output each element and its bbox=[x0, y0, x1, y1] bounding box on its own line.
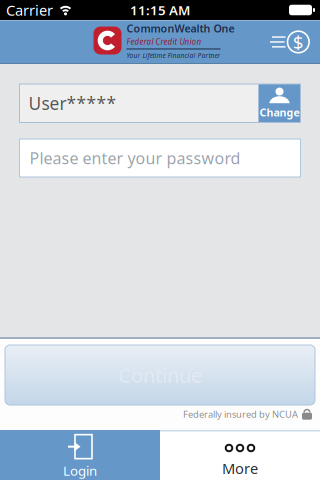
staticText: $ bbox=[293, 30, 304, 54]
staticText: More bbox=[222, 458, 258, 478]
button[interactable]: Change user bbox=[258, 84, 300, 122]
button[interactable]: Quick Balance bbox=[270, 30, 310, 54]
staticText: Login bbox=[63, 462, 97, 479]
staticText: Change bbox=[259, 105, 299, 119]
staticText: Federally insured by NCUA bbox=[183, 408, 298, 420]
button[interactable]: Password bbox=[19, 139, 300, 177]
button[interactable]: Login bbox=[0, 430, 160, 480]
staticText: 11:15 AM bbox=[130, 1, 190, 19]
staticText: CommonWealth One bbox=[126, 21, 234, 35]
button[interactable]: User ID bbox=[19, 84, 258, 122]
button[interactable]: Continue bbox=[5, 345, 315, 405]
staticText: Your Lifetime Financial Partner bbox=[126, 51, 220, 60]
staticText: Carrier bbox=[6, 0, 53, 20]
staticText: Federal Credit Union bbox=[126, 36, 201, 47]
staticText: Please enter your password bbox=[29, 147, 240, 169]
staticText: Continue bbox=[118, 362, 202, 388]
button[interactable]: More bbox=[160, 430, 320, 480]
staticText: User***** bbox=[28, 92, 116, 115]
